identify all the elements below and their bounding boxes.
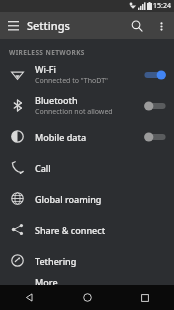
button[interactable]: Mobile data bbox=[0, 121, 174, 152]
button[interactable]: Bluetooth bbox=[0, 90, 174, 121]
button[interactable]: Wi-Fi bbox=[0, 59, 174, 90]
button[interactable]: Toggle off bbox=[143, 130, 167, 144]
button[interactable]: Home bbox=[58, 285, 116, 310]
staticText: Settings bbox=[27, 18, 70, 33]
button[interactable]: Tethering bbox=[0, 245, 174, 276]
button[interactable]: Back bbox=[0, 285, 58, 310]
button[interactable]: Toggle off bbox=[143, 99, 167, 113]
staticText: 15:24 bbox=[153, 1, 171, 11]
staticText: Share & connect bbox=[35, 224, 106, 236]
staticText: Tethering bbox=[35, 255, 77, 267]
button[interactable]: Toggle on bbox=[143, 68, 167, 82]
staticText: Call bbox=[35, 162, 51, 174]
button[interactable]: Recent apps bbox=[116, 285, 174, 310]
staticText: Wi-Fi bbox=[35, 63, 56, 75]
button[interactable]: Search bbox=[124, 13, 150, 39]
staticText: Connected to "ThoDT" bbox=[35, 76, 108, 86]
button[interactable]: Global roaming bbox=[0, 183, 174, 214]
button[interactable]: Call bbox=[0, 152, 174, 183]
button[interactable]: More bbox=[0, 276, 174, 285]
button[interactable]: Share & connect bbox=[0, 214, 174, 245]
staticText: Global roaming bbox=[35, 193, 102, 205]
staticText: Bluetooth bbox=[35, 94, 78, 106]
staticText: Connection not allowed bbox=[35, 107, 113, 117]
staticText: More bbox=[35, 276, 58, 285]
staticText: WIRELESS NETWORKS bbox=[9, 48, 85, 57]
button[interactable]: More options bbox=[150, 15, 172, 37]
staticText: Mobile data bbox=[35, 131, 87, 143]
button[interactable]: Open navigation drawer bbox=[0, 12, 27, 39]
